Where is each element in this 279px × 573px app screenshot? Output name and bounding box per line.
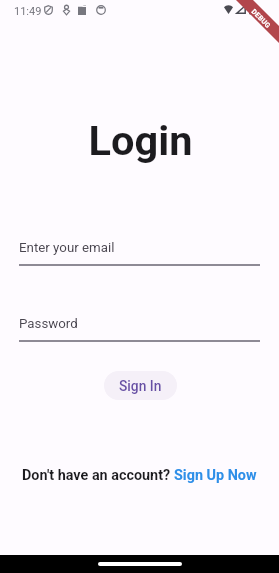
staticText: DEBUG — [250, 8, 272, 30]
staticText: Enter your email — [19, 240, 115, 256]
staticText: Don't have an account? — [22, 467, 174, 484]
staticText: Sign Up Now — [174, 467, 257, 484]
staticText: Login — [1, 116, 279, 165]
staticText: Password — [19, 316, 78, 332]
staticText: Sign In — [119, 378, 162, 394]
other: Debug banner — [233, 0, 279, 47]
button[interactable]: Sign Up Now — [174, 467, 257, 484]
staticText: 11:49 — [14, 5, 42, 18]
button[interactable]: Sign In — [104, 371, 177, 400]
